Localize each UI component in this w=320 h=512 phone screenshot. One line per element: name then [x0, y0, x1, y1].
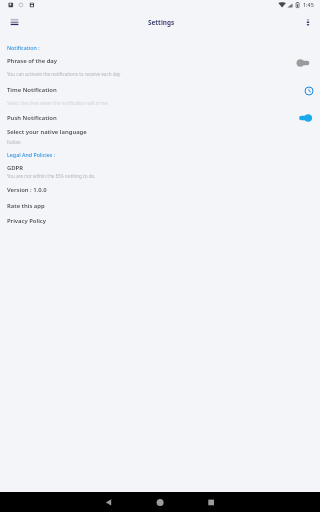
button[interactable]	[0, 198, 320, 214]
button[interactable]: Switch on	[294, 111, 314, 125]
button[interactable]: Set time	[304, 85, 316, 97]
button[interactable]	[0, 81, 320, 107]
button[interactable]: More options	[298, 11, 318, 33]
staticText: Settings	[148, 18, 175, 27]
staticText: Time Notification	[7, 86, 57, 94]
staticText: Privacy Policy	[7, 217, 47, 225]
button[interactable]: Switch off	[294, 56, 314, 70]
staticText: Rate this app	[7, 202, 45, 210]
button[interactable]	[0, 214, 320, 230]
staticText: You are not within the EEA nothing to do…	[7, 173, 96, 179]
button[interactable]: Back	[88, 492, 136, 512]
staticText: 1:45	[303, 1, 314, 8]
staticText: Legal And Policies :	[7, 151, 56, 158]
staticText: GDPR	[7, 164, 23, 172]
staticText: Italian	[7, 139, 21, 145]
button[interactable]: Home	[136, 492, 184, 512]
button[interactable]	[0, 126, 320, 147]
staticText: Notification :	[7, 44, 40, 51]
button[interactable]	[0, 52, 320, 122]
button[interactable]	[0, 183, 320, 198]
button[interactable]	[0, 161, 320, 182]
staticText: Select the time when the notification wi…	[7, 100, 109, 106]
staticText: Select your native language	[7, 128, 87, 136]
button[interactable]: Recent apps	[188, 492, 236, 512]
button[interactable]	[0, 110, 320, 125]
staticText: Push Notification	[7, 114, 57, 122]
staticText: Phrase of the day	[7, 57, 57, 65]
staticText: You can activate the notifications to re…	[7, 71, 121, 77]
staticText: Version : 1.0.0	[7, 186, 47, 194]
button[interactable]: Open navigation menu	[4, 11, 25, 33]
